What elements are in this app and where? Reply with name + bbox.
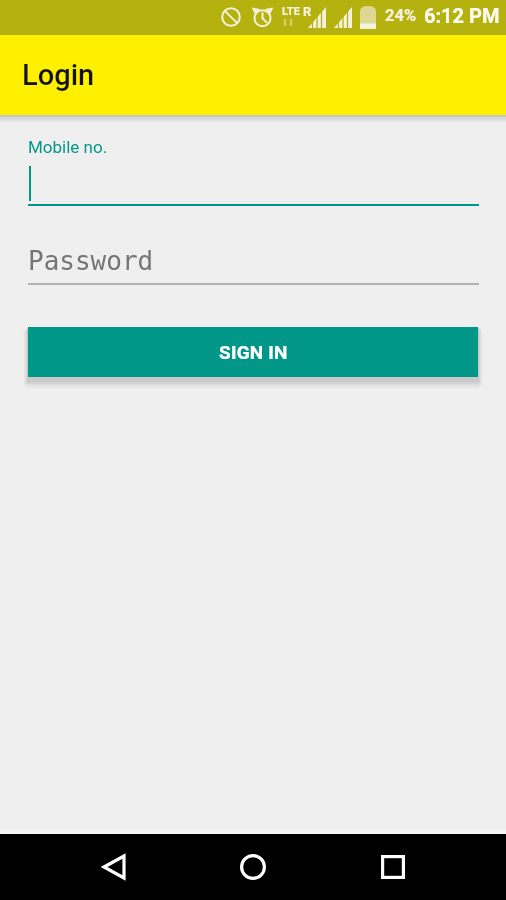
button[interactable]: SIGN IN — [28, 327, 478, 377]
button[interactable]: Recent apps — [367, 841, 419, 893]
staticText: Mobile no. — [28, 137, 108, 157]
staticText: 6:12 PM — [424, 4, 500, 27]
staticText: LTE — [282, 5, 300, 18]
button[interactable]: Back — [88, 841, 140, 893]
staticText: Password — [28, 246, 154, 276]
staticText: SIGN IN — [219, 341, 288, 363]
staticText: 24% — [385, 6, 417, 25]
staticText: Login — [22, 58, 95, 92]
staticText: R — [303, 4, 312, 19]
button[interactable]: Home — [227, 841, 279, 893]
